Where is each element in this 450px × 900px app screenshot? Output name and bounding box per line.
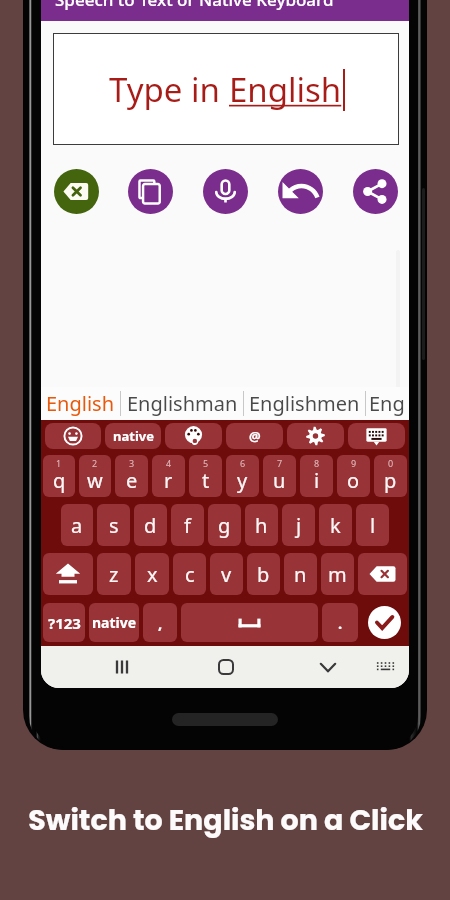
- staticText: 6: [240, 457, 246, 469]
- button[interactable]: d: [134, 504, 167, 546]
- button[interactable]: s: [97, 504, 130, 546]
- staticText: 7: [277, 457, 283, 469]
- staticText: English: [229, 67, 342, 112]
- staticText: j: [296, 512, 302, 539]
- staticText: a: [71, 512, 83, 539]
- staticText: c: [185, 561, 195, 588]
- button[interactable]: Shift: [43, 553, 93, 595]
- button[interactable]: Recent apps: [101, 646, 143, 688]
- staticText: z: [109, 561, 119, 588]
- staticText: native: [92, 613, 137, 632]
- staticText: h: [255, 512, 268, 539]
- staticText: q: [53, 467, 66, 494]
- button[interactable]: English: [41, 387, 120, 420]
- staticText: e: [126, 467, 138, 494]
- staticText: Englishmen: [249, 390, 360, 417]
- staticText: 8: [314, 457, 320, 469]
- staticText: 9: [351, 457, 357, 469]
- button[interactable]: g: [208, 504, 241, 546]
- button[interactable]: 4: [152, 455, 185, 497]
- button[interactable]: @: [226, 423, 283, 449]
- staticText: .: [338, 613, 343, 633]
- button[interactable]: Englishmen: [244, 387, 365, 420]
- button[interactable]: h: [245, 504, 278, 546]
- button[interactable]: 8: [300, 455, 333, 497]
- button[interactable]: j: [282, 504, 315, 546]
- button[interactable]: Hide keyboard: [307, 646, 349, 688]
- button[interactable]: n: [284, 553, 317, 595]
- staticText: i: [314, 467, 320, 494]
- button[interactable]: Undo: [278, 169, 323, 214]
- button[interactable]: Type in: [53, 33, 399, 145]
- staticText: 2: [92, 457, 98, 469]
- button[interactable]: b: [247, 553, 280, 595]
- button[interactable]: Enter: [368, 606, 401, 639]
- staticText: k: [330, 512, 341, 539]
- button[interactable]: Eng: [366, 387, 408, 420]
- staticText: l: [370, 512, 376, 539]
- button[interactable]: k: [319, 504, 352, 546]
- staticText: t: [202, 467, 210, 494]
- button[interactable]: Home: [205, 646, 247, 688]
- button[interactable]: Englishman: [121, 387, 243, 420]
- button[interactable]: ,: [143, 603, 177, 642]
- button[interactable]: Keyboard layout: [348, 423, 405, 449]
- button[interactable]: Voice input: [203, 169, 248, 214]
- button[interactable]: f: [171, 504, 204, 546]
- button[interactable]: .: [322, 603, 358, 642]
- button[interactable]: Space: [181, 603, 318, 642]
- button[interactable]: v: [210, 553, 243, 595]
- staticText: y: [237, 467, 248, 494]
- staticText: f: [184, 512, 191, 539]
- button[interactable]: 9: [337, 455, 370, 497]
- button[interactable]: x: [135, 553, 169, 595]
- button[interactable]: a: [61, 504, 93, 546]
- button[interactable]: Copy: [128, 169, 173, 214]
- staticText: o: [347, 467, 360, 494]
- staticText: 4: [166, 457, 172, 469]
- button[interactable]: ?123: [43, 603, 85, 642]
- button[interactable]: native: [105, 423, 161, 449]
- staticText: d: [144, 512, 157, 539]
- staticText: 0: [388, 457, 394, 469]
- staticText: x: [147, 561, 158, 588]
- staticText: g: [218, 512, 231, 539]
- staticText: m: [328, 561, 347, 588]
- staticText: 1: [56, 457, 62, 469]
- staticText: 5: [203, 457, 209, 469]
- staticText: ?123: [48, 613, 81, 633]
- button[interactable]: 7: [263, 455, 296, 497]
- staticText: ,: [158, 613, 163, 633]
- button[interactable]: Share: [353, 169, 398, 214]
- staticText: p: [384, 467, 397, 494]
- button[interactable]: 5: [189, 455, 222, 497]
- staticText: English: [46, 390, 115, 417]
- staticText: u: [273, 467, 286, 494]
- staticText: v: [221, 561, 232, 588]
- staticText: Speech to Text or Native Keyboard: [55, 0, 334, 11]
- button[interactable]: 0: [374, 455, 407, 497]
- button[interactable]: native: [89, 603, 139, 642]
- staticText: 3: [129, 457, 135, 469]
- button[interactable]: Delete: [358, 553, 407, 595]
- button[interactable]: 2: [79, 455, 111, 497]
- button[interactable]: z: [97, 553, 131, 595]
- button[interactable]: 3: [115, 455, 148, 497]
- button[interactable]: l: [356, 504, 389, 546]
- button[interactable]: Theme: [165, 423, 222, 449]
- button[interactable]: m: [321, 553, 354, 595]
- staticText: Eng: [369, 390, 405, 417]
- button[interactable]: Emoji: [45, 423, 101, 449]
- button[interactable]: 1: [43, 455, 75, 497]
- button[interactable]: Switch keyboard: [364, 646, 406, 688]
- staticText: s: [109, 512, 119, 539]
- button[interactable]: Backspace: [54, 169, 99, 214]
- staticText: Type in: [109, 67, 229, 112]
- button[interactable]: c: [173, 553, 206, 595]
- button[interactable]: Settings: [287, 423, 344, 449]
- button[interactable]: 6: [226, 455, 259, 497]
- staticText: b: [257, 561, 270, 588]
- staticText: w: [87, 467, 103, 494]
- staticText: Switch to English on a Click: [28, 800, 423, 840]
- staticText: @: [249, 427, 261, 445]
